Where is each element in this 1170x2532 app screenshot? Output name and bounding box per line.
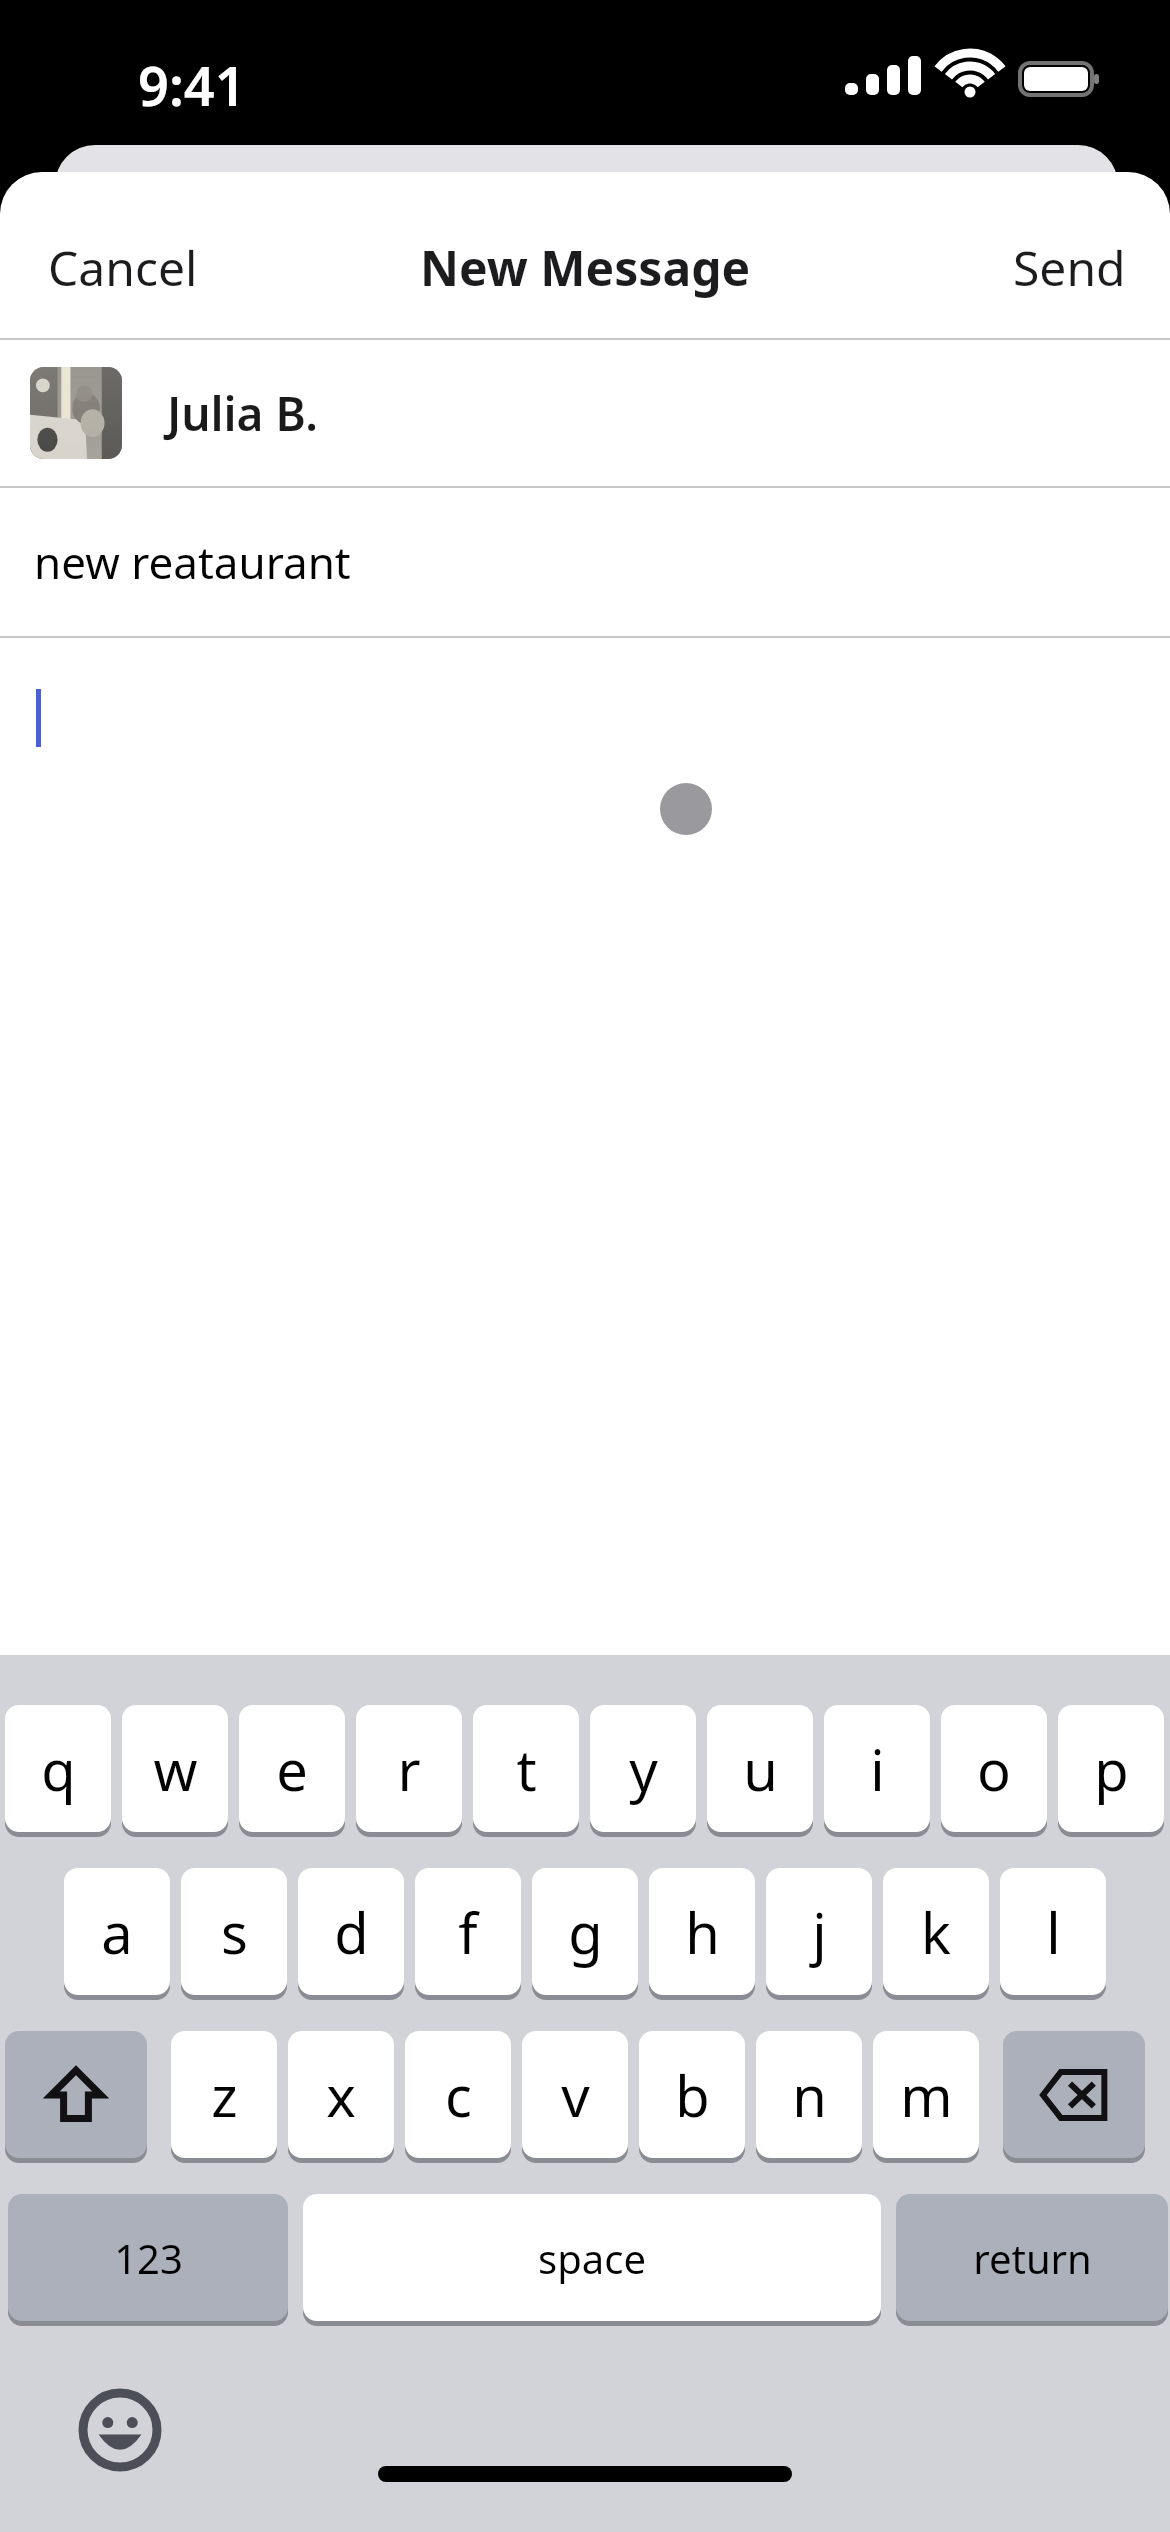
staticText: u [743, 1731, 778, 1807]
button[interactable]: m [873, 2031, 979, 2163]
button[interactable]: b [639, 2031, 745, 2163]
button[interactable]: l [1000, 1868, 1106, 2000]
staticText: e [276, 1731, 308, 1807]
button[interactable]: Send [969, 213, 1170, 322]
button[interactable]: n [756, 2031, 862, 2163]
staticText: r [397, 1731, 421, 1807]
button[interactable]: a [64, 1868, 170, 2000]
button[interactable]: k [883, 1868, 989, 2000]
staticText: 123 [114, 2231, 183, 2285]
button[interactable]: j [766, 1868, 872, 2000]
button[interactable]: Shift [5, 2031, 147, 2163]
staticText: new reataurant [34, 532, 351, 592]
staticText: s [221, 1894, 248, 1970]
button[interactable]: v [522, 2031, 628, 2163]
staticText: b [675, 2057, 710, 2133]
staticText: 9:41 [138, 48, 246, 122]
staticText: t [516, 1731, 537, 1807]
staticText: f [458, 1894, 478, 1970]
button[interactable]: i [824, 1705, 930, 1837]
staticText: c [445, 2057, 472, 2133]
button[interactable]: g [532, 1868, 638, 2000]
staticText: w [153, 1731, 198, 1807]
staticText: z [211, 2057, 238, 2133]
staticText: m [900, 2057, 953, 2133]
button[interactable]: d [298, 1868, 404, 2000]
staticText: Send [1013, 235, 1126, 300]
staticText: a [101, 1894, 133, 1970]
staticText: h [685, 1894, 720, 1970]
staticText: p [1094, 1731, 1129, 1807]
staticText: New Message [420, 235, 751, 300]
button[interactable]: Backspace [1003, 2031, 1145, 2163]
staticText: g [568, 1894, 603, 1970]
staticText: l [1046, 1894, 1061, 1970]
button[interactable]: space [303, 2194, 881, 2326]
staticText: n [792, 2057, 827, 2133]
button[interactable]: return [896, 2194, 1168, 2326]
button[interactable]: u [707, 1705, 813, 1837]
staticText: x [326, 2057, 356, 2133]
button[interactable]: new reataurant [0, 488, 1170, 636]
button[interactable]: Emoji keyboard [78, 2388, 162, 2472]
staticText: o [977, 1731, 1011, 1807]
button[interactable] [0, 638, 1170, 1655]
staticText: i [870, 1731, 885, 1807]
button[interactable]: z [171, 2031, 277, 2163]
staticText: j [812, 1894, 827, 1970]
button[interactable]: f [415, 1868, 521, 2000]
staticText: Julia B. [167, 382, 319, 445]
staticText: d [334, 1894, 369, 1970]
button[interactable]: h [649, 1868, 755, 2000]
button[interactable]: w [122, 1705, 228, 1837]
staticText: y [629, 1731, 658, 1807]
staticText: Cancel [48, 235, 198, 300]
button[interactable]: p [1058, 1705, 1164, 1837]
button[interactable]: c [405, 2031, 511, 2163]
staticText: k [921, 1894, 951, 1970]
button[interactable]: q [5, 1705, 111, 1837]
staticText: v [561, 2057, 590, 2133]
button[interactable]: 123 [8, 2194, 288, 2326]
staticText: space [538, 2231, 646, 2285]
button[interactable]: e [239, 1705, 345, 1837]
button[interactable]: o [941, 1705, 1047, 1837]
staticText: q [41, 1731, 76, 1807]
button[interactable]: t [473, 1705, 579, 1837]
button[interactable]: Julia B. [0, 340, 1170, 486]
button[interactable]: s [181, 1868, 287, 2000]
staticText: return [973, 2231, 1092, 2285]
button[interactable]: x [288, 2031, 394, 2163]
button[interactable]: y [590, 1705, 696, 1837]
button[interactable]: Cancel [0, 213, 246, 322]
button[interactable]: r [356, 1705, 462, 1837]
